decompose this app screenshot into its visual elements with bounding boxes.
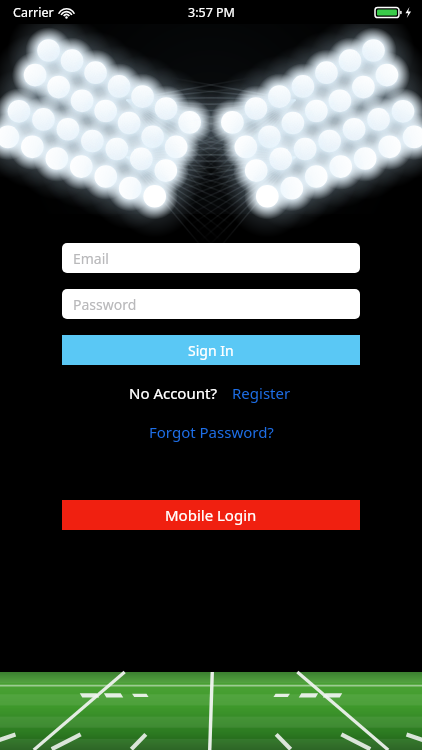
staticText: 3:57 PM [188, 4, 235, 21]
staticText: Carrier [13, 4, 54, 21]
staticText: Email [73, 249, 109, 268]
staticText: Password [73, 295, 137, 314]
staticText: Mobile Login [165, 505, 257, 525]
staticText: No Account? [129, 383, 217, 403]
button[interactable]: Password [62, 289, 360, 319]
staticText: Forgot Password? [149, 422, 274, 442]
button[interactable]: Register [230, 381, 293, 405]
button[interactable]: Forgot Password? [143, 419, 280, 445]
button[interactable]: Sign In [62, 335, 360, 365]
staticText: Register [232, 383, 291, 403]
button[interactable]: Email [62, 243, 360, 273]
staticText: Sign In [188, 341, 234, 360]
button[interactable]: Mobile Login [62, 500, 360, 530]
